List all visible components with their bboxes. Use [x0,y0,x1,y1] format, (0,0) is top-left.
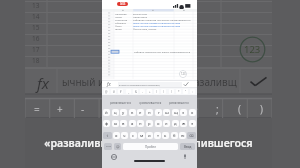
button[interactable]: Change language [111,154,117,160]
button[interactable]: а [129,120,136,127]
button[interactable]: и [146,132,153,139]
button[interactable]: ) [250,99,272,118]
staticText: ь [164,133,167,139]
button[interactable]: е [137,109,144,116]
button[interactable]: ( [228,99,250,118]
staticText: Автор [115,15,123,18]
staticText: > [192,102,198,116]
button[interactable]: " [183,89,188,94]
button[interactable]: «развалившегося [139,101,162,105]
staticText: + [57,102,63,116]
button[interactable]: Numeric keypad [239,36,266,63]
button[interactable]: + [147,89,152,94]
button[interactable]: ф [103,120,110,127]
button[interactable]: у [120,109,127,116]
button[interactable]: < [162,99,184,118]
staticText: м [140,133,144,139]
button[interactable]: щ [172,109,179,116]
button[interactable]: ( [154,89,159,94]
button[interactable]: Voice input [182,154,188,160]
button[interactable]: ю [179,132,186,139]
button[interactable]: ) [161,89,166,94]
staticText: Описание [115,18,128,21]
button[interactable]: развалившегося [110,101,131,105]
button[interactable]: г [155,109,162,116]
button[interactable]: Screen recording [117,2,128,6]
button[interactable]: д [172,120,179,127]
button[interactable]: ₽ [118,89,123,94]
staticText: " [185,90,187,94]
button[interactable]: / [117,99,140,118]
button[interactable]: т [154,132,161,139]
button[interactable]: Shift [103,132,112,139]
button[interactable]: я [113,132,120,139]
button[interactable]: л [163,120,170,127]
staticText: fx [37,73,50,93]
button[interactable]: ?123 [104,143,112,150]
staticText: 0:03 [120,2,126,6]
button[interactable]: й [103,109,110,116]
button[interactable]: к [129,109,136,116]
button[interactable]: # [111,89,116,94]
button[interactable]: > [184,99,206,118]
button[interactable]: з [180,109,187,116]
staticText: 14 [32,12,40,21]
button[interactable]: - [140,89,145,94]
staticText: э [191,121,194,127]
staticText: / [171,90,172,94]
button[interactable]: Accept [183,81,189,87]
staticText: и [148,133,151,139]
button[interactable]: : [190,89,195,94]
staticText: развалившееся [169,101,189,105]
button[interactable]: = [25,99,48,118]
button[interactable]: + [48,99,71,118]
staticText: ) [260,102,263,116]
button[interactable]: ч [121,132,128,139]
button[interactable]: _ [126,89,131,94]
button[interactable]: Accept [244,69,272,94]
button[interactable]: ^ [140,99,162,118]
button[interactable]: ш [163,109,170,116]
staticText: развалившегося [110,101,131,105]
button[interactable]: о [155,120,162,127]
staticText: Забавно смешная про жизнь развалившегося [134,50,191,53]
button[interactable]: Ввод [180,143,195,150]
button[interactable]: ичный и мокромятный развалищ [118,82,182,87]
button[interactable]: м [138,132,145,139]
staticText: н [148,110,151,116]
staticText: Забавная смешная про жизнь развалившегос… [133,18,191,21]
button[interactable]: * [176,89,181,94]
button[interactable]: Numeric keypad [179,70,187,78]
button[interactable]: ь [162,132,169,139]
button[interactable]: ж [180,120,187,127]
button[interactable]: ; [206,99,228,118]
staticText: Белый шум [133,12,147,15]
button[interactable]: р [146,120,153,127]
button[interactable]: б [171,132,178,139]
staticText: < [170,102,176,116]
button[interactable]: в [120,120,127,127]
button[interactable]: * [94,99,117,118]
staticText: Фантастика, роман [133,27,157,30]
button[interactable]: н [146,109,153,116]
button[interactable]: @ [104,89,109,94]
button[interactable]: ы [112,120,119,127]
button[interactable]: э [189,120,196,127]
button[interactable]: Emoji [114,143,121,150]
staticText: а [131,121,134,127]
button[interactable]: ц [112,109,119,116]
staticText: * [178,90,180,94]
button[interactable]: & [133,89,138,94]
staticText: ; [216,102,219,116]
button[interactable]: - [71,99,94,118]
button[interactable]: с [130,132,137,139]
button[interactable]: / [169,89,174,94]
button[interactable] [111,50,119,53]
button[interactable]: п [137,120,144,127]
button[interactable]: развалившееся [169,101,189,105]
staticText: е [139,110,142,116]
button[interactable]: х [189,109,196,116]
button[interactable]: Пробел [123,143,178,150]
staticText: «развалившегося [139,101,162,105]
button[interactable]: Backspace [187,132,196,139]
